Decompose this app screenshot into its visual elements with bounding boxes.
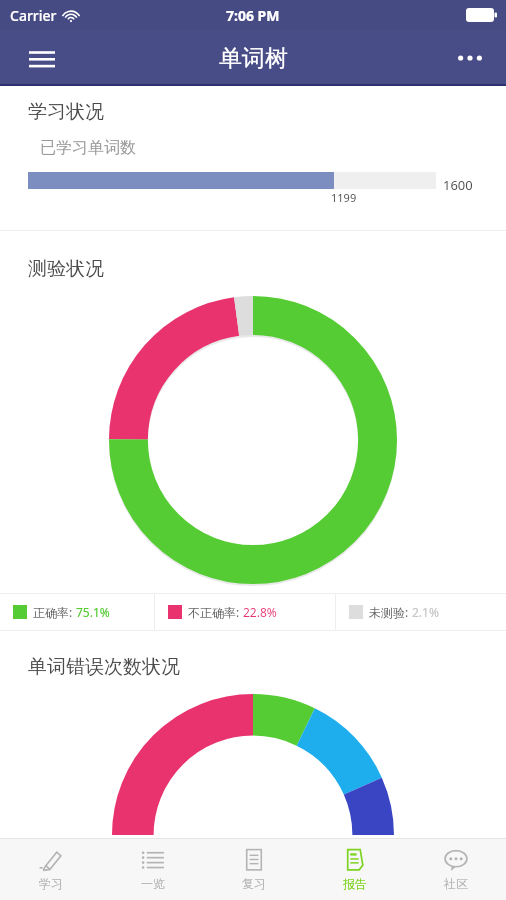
- staticText: 未测验:: [369, 604, 412, 620]
- staticText: 单词树: [219, 44, 288, 73]
- staticText: 一览: [141, 876, 165, 891]
- staticText: 正确率:: [33, 604, 76, 620]
- button[interactable]: Menu: [20, 36, 64, 80]
- button[interactable]: 正确率:: [0, 594, 154, 630]
- staticText: 1199: [331, 190, 357, 205]
- button[interactable]: 未测验:: [336, 594, 506, 630]
- staticText: 学习: [39, 876, 63, 891]
- button[interactable]: 社区: [405, 839, 506, 900]
- staticText: 1600: [443, 176, 473, 194]
- staticText: 学习状况: [28, 100, 104, 124]
- staticText: 不正确率:: [188, 604, 243, 620]
- staticText: 复习: [242, 876, 266, 891]
- staticText: 已学习单词数: [40, 138, 136, 158]
- button[interactable]: 复习: [203, 839, 304, 900]
- button[interactable]: 不正确率:: [155, 594, 335, 630]
- staticText: Carrier: [10, 6, 57, 25]
- staticText: 75.1%: [76, 604, 110, 620]
- button[interactable]: 学习: [0, 839, 102, 900]
- staticText: 单词错误次数状况: [28, 655, 180, 679]
- staticText: 测验状况: [28, 257, 104, 281]
- button[interactable]: More options: [448, 36, 492, 80]
- staticText: 22.8%: [243, 604, 277, 620]
- staticText: 报告: [343, 876, 367, 891]
- staticText: 2.1%: [412, 604, 439, 620]
- button[interactable]: 一览: [102, 839, 203, 900]
- button[interactable]: 报告: [304, 839, 405, 900]
- staticText: 社区: [444, 876, 468, 891]
- staticText: 7:06 PM: [226, 6, 280, 25]
